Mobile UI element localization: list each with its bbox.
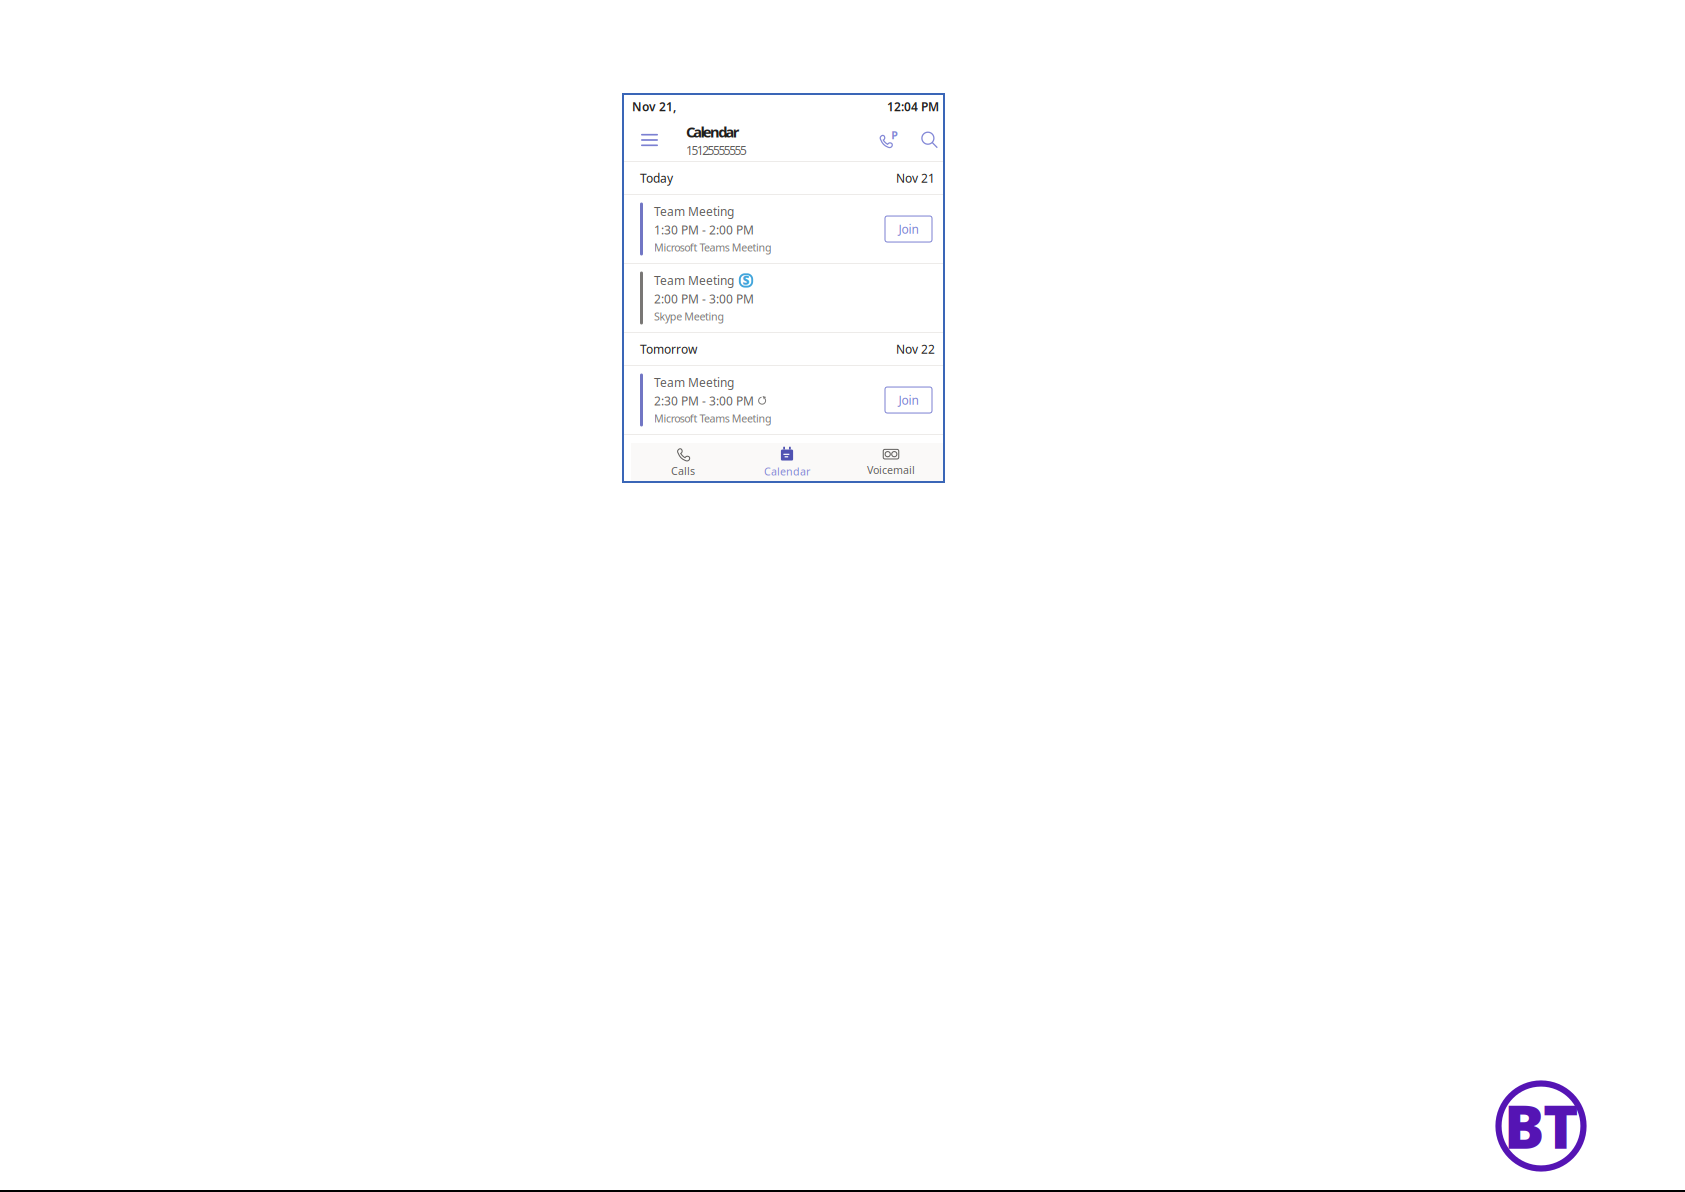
- staticText: Voicemail: [867, 463, 915, 477]
- staticText: BT: [1504, 1085, 1578, 1166]
- staticText: Nov 21: [896, 170, 935, 186]
- staticText: 12:04 PM: [887, 98, 939, 115]
- button[interactable]: Calendar: [735, 443, 839, 482]
- button[interactable]: Voicemail: [839, 443, 943, 482]
- staticText: 2:00 PM - 3:00 PM: [654, 291, 754, 307]
- button[interactable]: Parked calls: [875, 121, 903, 159]
- staticText: Skype Meeting: [654, 309, 725, 324]
- staticText: Microsoft Teams Meeting: [654, 240, 772, 255]
- button[interactable]: Team Meeting: [624, 264, 943, 332]
- staticText: 1:30 PM - 2:00 PM: [654, 222, 754, 238]
- staticText: 15125555555: [686, 142, 747, 158]
- staticText: Team Meeting: [654, 203, 734, 219]
- staticText: Nov 21,: [632, 98, 676, 115]
- staticText: Today: [640, 170, 673, 186]
- staticText: Calls: [671, 464, 695, 478]
- staticText: Team Meeting: [654, 374, 734, 390]
- staticText: Calendar: [686, 122, 740, 142]
- button[interactable]: Search: [920, 121, 939, 159]
- staticText: Team Meeting: [654, 272, 734, 288]
- staticText: Nov 22: [896, 341, 935, 357]
- staticText: Tomorrow: [640, 341, 697, 357]
- button[interactable]: Calls: [631, 443, 735, 482]
- staticText: Join: [898, 221, 918, 237]
- staticText: Join: [898, 392, 918, 408]
- staticText: Microsoft Teams Meeting: [654, 411, 772, 426]
- staticText: P: [891, 128, 898, 142]
- button[interactable]: Team Meeting: [624, 195, 943, 263]
- button[interactable]: Team Meeting: [624, 366, 943, 434]
- button[interactable]: Menu: [632, 120, 667, 160]
- staticText: 2:30 PM - 3:00 PM: [654, 393, 754, 409]
- staticText: Calendar: [764, 464, 810, 478]
- staticText: S: [742, 272, 749, 288]
